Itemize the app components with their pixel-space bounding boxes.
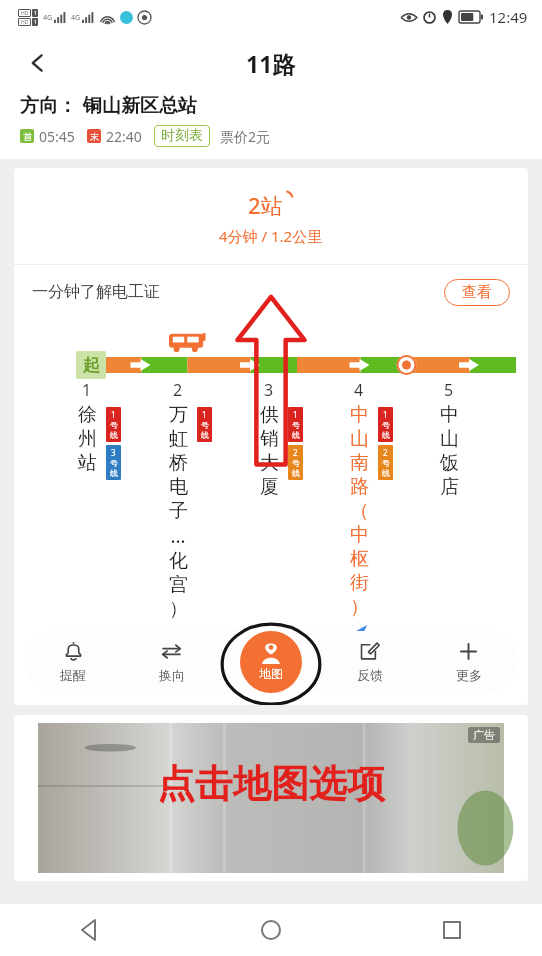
- staticText: 南: [350, 451, 369, 475]
- button[interactable]: Back: [0, 904, 180, 956]
- staticText: 宫: [169, 573, 188, 597]
- staticText: 供: [260, 403, 279, 427]
- staticText: 线: [382, 468, 390, 478]
- staticText: 起: [83, 355, 100, 376]
- staticText: 号: [292, 420, 300, 430]
- staticText: 票价2元: [220, 127, 271, 146]
- staticText: 5: [444, 379, 454, 401]
- staticText: 万: [169, 403, 188, 427]
- staticText: 1: [202, 409, 207, 420]
- staticText: 1: [34, 10, 37, 17]
- staticText: ）: [350, 595, 369, 619]
- staticText: 站: [78, 451, 97, 475]
- staticText: HD: [21, 10, 29, 17]
- staticText: 点击地图选项: [157, 760, 385, 808]
- staticText: 号: [382, 458, 390, 468]
- button[interactable]: 3: [252, 379, 342, 499]
- staticText: 号: [110, 420, 118, 430]
- staticText: 22:40: [106, 127, 142, 146]
- staticText: 11路: [246, 48, 296, 79]
- staticText: 线: [292, 468, 300, 478]
- staticText: …: [170, 523, 186, 549]
- staticText: 号: [110, 458, 118, 468]
- button[interactable]: 提醒: [24, 631, 122, 693]
- button[interactable]: Recents: [361, 904, 542, 956]
- staticText: 12:49: [489, 7, 528, 27]
- staticText: 徐: [78, 403, 97, 427]
- staticText: 饭: [440, 451, 459, 475]
- staticText: 换向: [159, 667, 185, 683]
- staticText: 广告: [473, 728, 495, 742]
- button[interactable]: 1: [70, 379, 161, 483]
- staticText: 山: [440, 427, 459, 451]
- staticText: 2站: [248, 190, 283, 220]
- staticText: 1: [293, 409, 298, 420]
- staticText: 1: [34, 19, 37, 26]
- button[interactable]: 更多: [419, 631, 518, 693]
- staticText: 中: [440, 403, 459, 427]
- staticText: 桥: [169, 451, 188, 475]
- staticText: 号: [382, 420, 390, 430]
- staticText: 1: [82, 379, 92, 401]
- staticText: ）: [169, 597, 188, 621]
- staticText: 3: [264, 379, 274, 401]
- staticText: 地图: [259, 666, 283, 681]
- button[interactable]: 广告: [38, 723, 504, 873]
- staticText: 末: [90, 131, 99, 142]
- button[interactable]: 4: [342, 379, 432, 640]
- button[interactable]: Home: [180, 904, 361, 956]
- staticText: 中: [350, 403, 369, 427]
- button[interactable]: 5: [432, 379, 522, 499]
- staticText: 3: [111, 447, 116, 458]
- staticText: HD: [21, 19, 29, 26]
- staticText: 线: [292, 430, 300, 440]
- staticText: （: [350, 499, 369, 523]
- button[interactable]: Back: [14, 39, 62, 87]
- button[interactable]: 地图: [240, 631, 302, 693]
- staticText: 线: [201, 430, 209, 440]
- staticText: 4分钟 / 1.2公里: [219, 226, 323, 246]
- staticText: 提醒: [60, 667, 86, 683]
- staticText: 线: [110, 430, 118, 440]
- staticText: 2: [173, 379, 183, 401]
- staticText: 线: [382, 430, 390, 440]
- staticText: 街: [350, 571, 369, 595]
- staticText: 厦: [260, 475, 279, 499]
- staticText: 号: [201, 420, 209, 430]
- staticText: 枢: [350, 547, 369, 571]
- staticText: 子: [169, 499, 188, 523]
- button[interactable]: 一分钟了解电工证: [14, 265, 528, 319]
- staticText: 2: [383, 447, 388, 458]
- staticText: 大: [260, 451, 279, 475]
- staticText: 化: [169, 549, 188, 573]
- staticText: 方向：: [20, 94, 77, 118]
- staticText: 查看: [462, 283, 492, 302]
- staticText: 05:45: [39, 127, 75, 146]
- staticText: 电: [169, 475, 188, 499]
- staticText: 州: [78, 427, 97, 451]
- staticText: 1: [383, 409, 388, 420]
- button[interactable]: 2: [161, 379, 252, 621]
- staticText: 2: [293, 447, 298, 458]
- staticText: 销: [260, 427, 279, 451]
- staticText: 1: [111, 409, 116, 420]
- staticText: 号: [292, 458, 300, 468]
- staticText: 4G: [71, 13, 81, 23]
- staticText: 反馈: [357, 667, 383, 683]
- staticText: 线: [110, 468, 118, 478]
- staticText: 山: [350, 427, 369, 451]
- button[interactable]: 时刻表: [154, 125, 210, 147]
- staticText: 4G: [43, 13, 53, 23]
- staticText: 店: [440, 475, 459, 499]
- staticText: 4: [354, 379, 364, 401]
- staticText: 一分钟了解电工证: [32, 282, 160, 302]
- staticText: 时刻表: [161, 127, 203, 145]
- staticText: 铜山新区总站: [83, 94, 197, 118]
- staticText: 虹: [169, 427, 188, 451]
- staticText: 首: [23, 131, 32, 142]
- button[interactable]: 换向: [122, 631, 221, 693]
- button[interactable]: 反馈: [320, 631, 419, 693]
- staticText: 中: [350, 523, 369, 547]
- staticText: 路: [350, 475, 369, 499]
- staticText: 更多: [456, 667, 482, 683]
